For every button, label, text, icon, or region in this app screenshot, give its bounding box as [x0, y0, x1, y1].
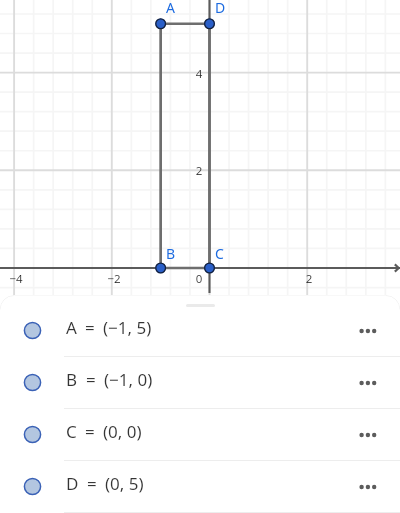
staticText: A: [66, 316, 77, 339]
staticText: =: [86, 368, 96, 391]
staticText: B: [66, 368, 78, 391]
button[interactable]: B: [0, 357, 400, 409]
staticText: =: [87, 472, 97, 495]
staticText: 4: [177, 66, 221, 82]
staticText: −2: [92, 271, 136, 287]
staticText: 0: [177, 271, 221, 287]
button[interactable]: More options: [346, 413, 390, 457]
staticText: D: [215, 0, 259, 17]
staticText: −4: [0, 271, 38, 287]
staticText: C: [215, 244, 259, 263]
staticText: =: [85, 420, 95, 443]
staticText: (−1, 0): [104, 368, 153, 391]
staticText: (−1, 5): [103, 316, 152, 339]
staticText: A: [166, 0, 210, 17]
staticText: (0, 0): [103, 420, 142, 443]
staticText: =: [85, 316, 95, 339]
staticText: B: [166, 244, 210, 263]
staticText: 2: [287, 271, 331, 287]
button[interactable]: More options: [346, 465, 390, 509]
button[interactable]: A: [0, 305, 400, 357]
button[interactable]: D: [0, 461, 400, 513]
staticText: C: [66, 420, 77, 443]
button[interactable]: More options: [346, 361, 390, 405]
button[interactable]: C: [0, 409, 400, 461]
staticText: 2: [177, 163, 221, 179]
button[interactable]: More options: [346, 309, 390, 353]
staticText: (0, 5): [105, 472, 144, 495]
staticText: D: [66, 472, 79, 495]
